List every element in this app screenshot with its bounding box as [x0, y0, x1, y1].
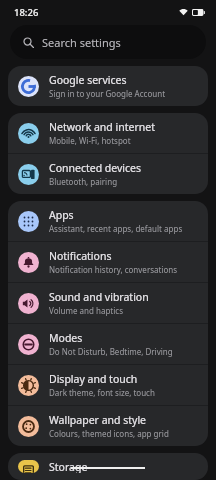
staticText: Connected devices [49, 161, 142, 175]
button[interactable]: Sound and vibration [8, 283, 208, 323]
staticText: Storage [49, 460, 88, 473]
button[interactable]: Storage [8, 453, 208, 480]
staticText: Do Not Disturb, Bedtime, Driving [49, 346, 173, 357]
staticText: Wallpaper and style [49, 413, 147, 427]
other: Apps [18, 211, 39, 232]
other: Google services [18, 76, 39, 97]
staticText: Notification history, conversations [49, 264, 178, 275]
other: Modes [18, 334, 39, 355]
button[interactable]: Search settings [10, 25, 206, 59]
staticText: Network and internet [49, 120, 155, 134]
button[interactable]: Network and internet [8, 113, 208, 153]
other: Notifications [18, 252, 39, 273]
button[interactable]: Modes [8, 324, 208, 364]
other: Storage [18, 460, 39, 473]
button[interactable]: Display and touch [8, 365, 208, 405]
other: Wallpaper and style [18, 416, 39, 437]
staticText: Sound and vibration [49, 290, 149, 304]
button[interactable]: Apps [8, 201, 208, 241]
staticText: Mobile, Wi-Fi, hotspot [49, 135, 131, 146]
staticText: 18:26 [14, 6, 39, 19]
staticText: Apps [49, 208, 74, 222]
button[interactable]: Google services [8, 66, 208, 106]
staticText: Assistant, recent apps, default apps [49, 223, 183, 234]
staticText: Sign in to your Google Account [49, 88, 166, 99]
staticText: Dark theme, font size, touch [49, 387, 155, 398]
staticText: Search settings [42, 35, 121, 50]
button[interactable]: Notifications [8, 242, 208, 282]
other: Connected devices [18, 164, 39, 185]
staticText: Bluetooth, pairing [49, 176, 118, 187]
other: Sound and vibration [18, 293, 39, 314]
button[interactable]: Connected devices [8, 154, 208, 194]
other: Network and internet [18, 123, 39, 144]
button[interactable]: Wallpaper and style [8, 406, 208, 446]
staticText: Volume and haptics [49, 305, 123, 316]
staticText: Notifications [49, 249, 112, 263]
staticText: Modes [49, 331, 83, 345]
staticText: Google services [49, 73, 127, 87]
other: Wi-Fi [179, 8, 188, 17]
staticText: Display and touch [49, 372, 138, 386]
other: Display and touch [18, 375, 39, 396]
staticText: Colours, themed icons, app grid [49, 428, 169, 439]
other: Battery [192, 9, 205, 16]
